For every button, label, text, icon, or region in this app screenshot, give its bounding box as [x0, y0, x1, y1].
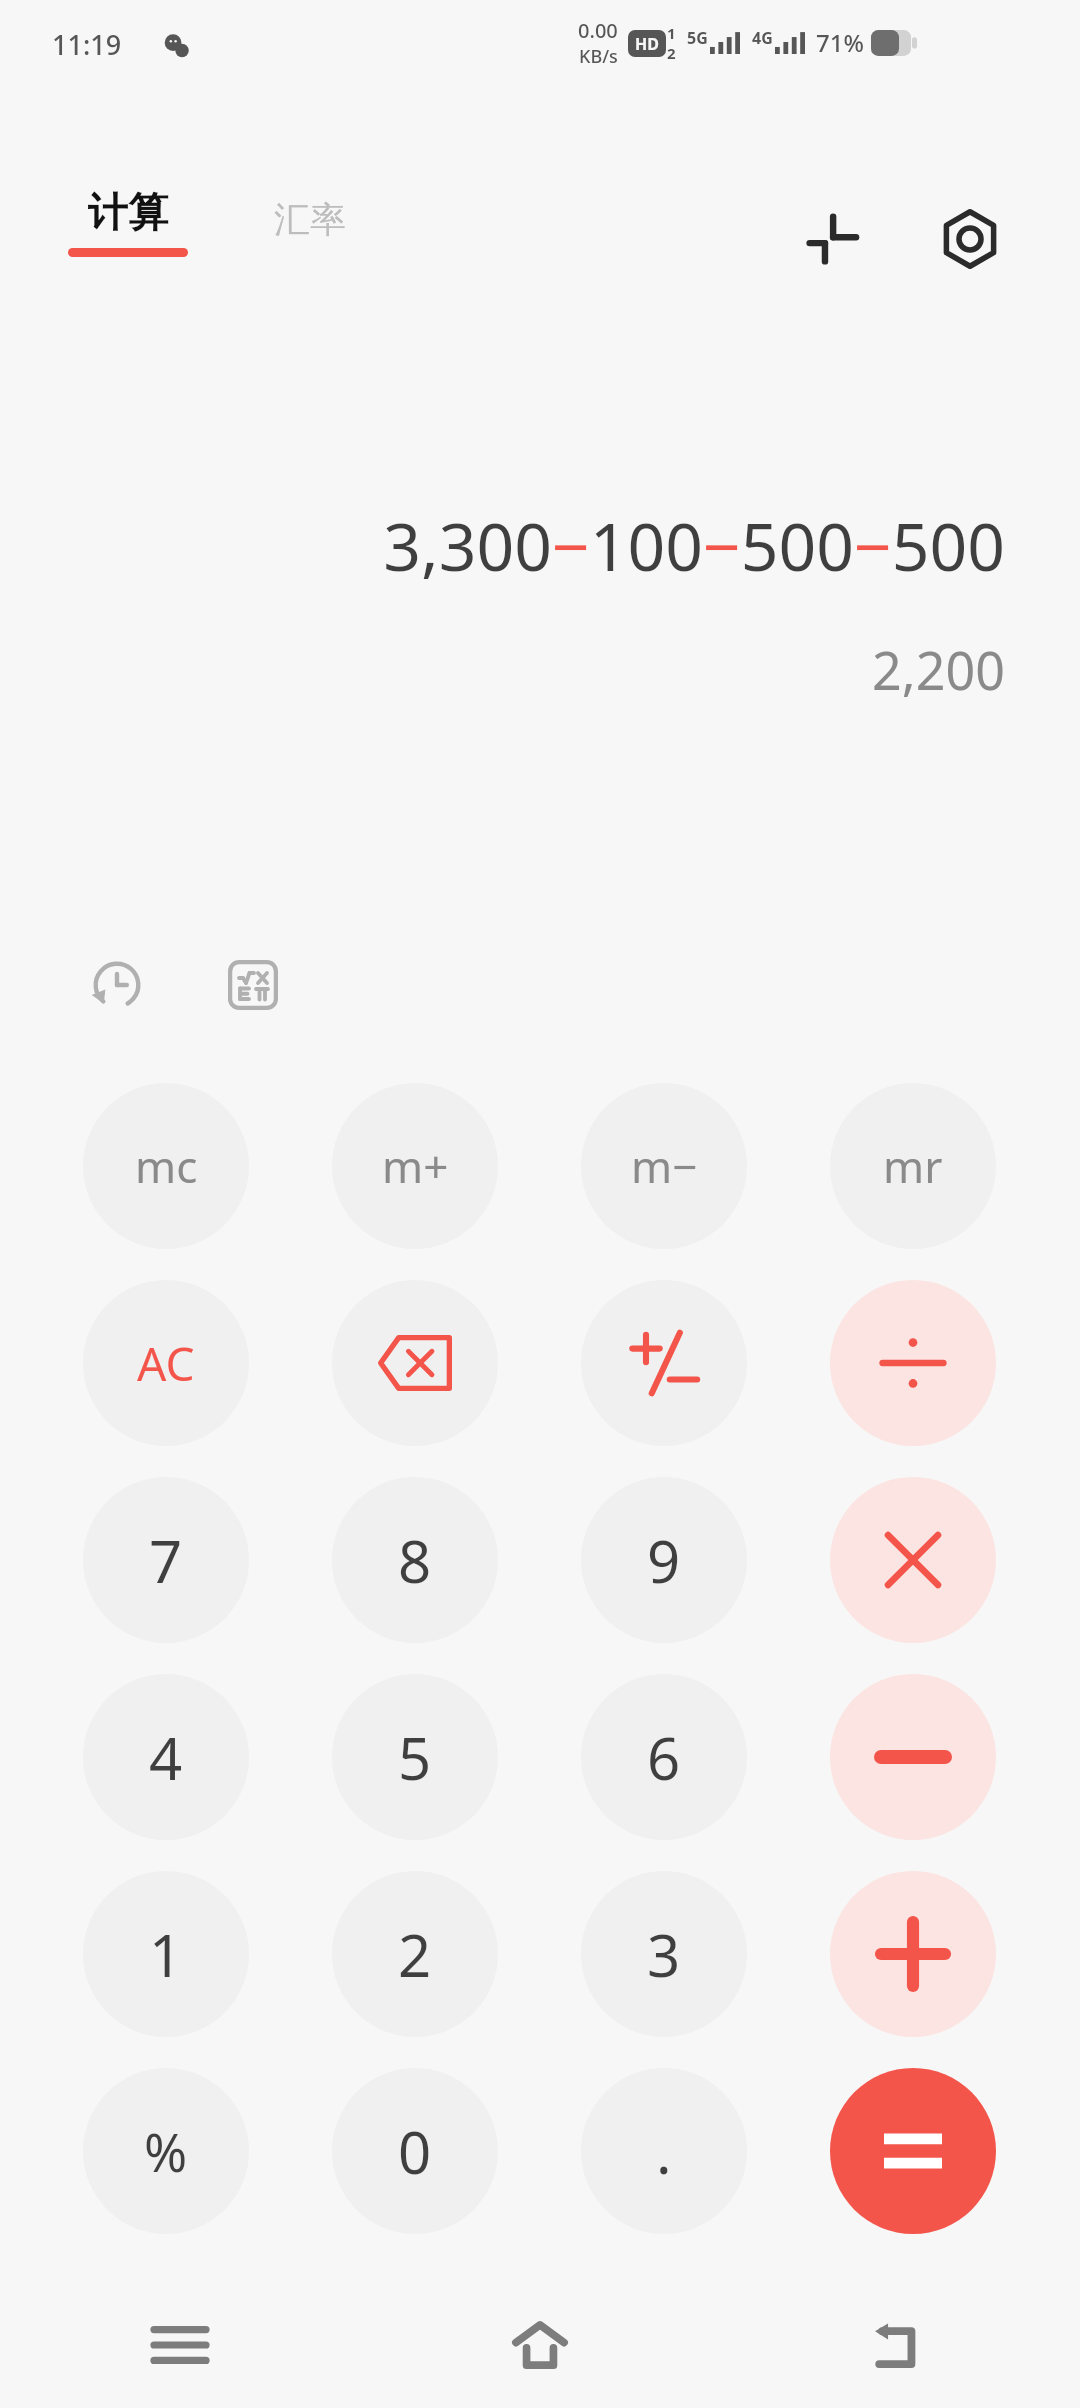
- staticText: m+: [382, 1136, 449, 1196]
- button[interactable]: Equals: [830, 2068, 996, 2234]
- staticText: 8: [398, 1521, 432, 1600]
- button[interactable]: History: [62, 930, 172, 1040]
- staticText: mr: [883, 1136, 943, 1196]
- button[interactable]: 5: [332, 1674, 498, 1840]
- staticText: .: [656, 2112, 672, 2191]
- staticText: 7: [149, 1521, 183, 1600]
- button[interactable]: 9: [581, 1477, 747, 1643]
- staticText: 4G: [752, 27, 773, 49]
- button[interactable]: 7: [83, 1477, 249, 1643]
- button[interactable]: 6: [581, 1674, 747, 1840]
- staticText: 1: [149, 1915, 183, 1994]
- button[interactable]: mr: [830, 1083, 996, 1249]
- staticText: 0.00: [578, 17, 618, 44]
- staticText: 2: [398, 1915, 432, 1994]
- staticText: 汇率: [274, 197, 346, 242]
- button[interactable]: 汇率: [256, 183, 364, 256]
- button[interactable]: Plus minus: [581, 1280, 747, 1446]
- button[interactable]: Multiply: [830, 1477, 996, 1643]
- staticText: 3,300−100−500−500: [383, 500, 1005, 590]
- button[interactable]: m−: [581, 1083, 747, 1249]
- button[interactable]: m+: [332, 1083, 498, 1249]
- button[interactable]: .: [581, 2068, 747, 2234]
- button[interactable]: Collapse: [782, 189, 882, 289]
- button[interactable]: Minus: [830, 1674, 996, 1840]
- staticText: 9: [647, 1521, 681, 1600]
- button[interactable]: 0: [332, 2068, 498, 2234]
- button[interactable]: Scientific: [198, 930, 308, 1040]
- button[interactable]: Plus: [830, 1871, 996, 2037]
- button[interactable]: 3: [581, 1871, 747, 2037]
- staticText: m−: [631, 1136, 698, 1196]
- staticText: 4: [149, 1718, 183, 1797]
- button[interactable]: AC: [83, 1280, 249, 1446]
- staticText: 11:19: [52, 26, 122, 63]
- staticText: KB/s: [579, 44, 618, 69]
- staticText: 计算: [88, 187, 168, 237]
- button[interactable]: Divide: [830, 1280, 996, 1446]
- staticText: %: [144, 2116, 188, 2187]
- staticText: 6: [647, 1718, 681, 1797]
- button[interactable]: 8: [332, 1477, 498, 1643]
- staticText: 71%: [816, 26, 864, 59]
- staticText: mc: [135, 1136, 198, 1196]
- staticText: 2: [667, 43, 676, 63]
- staticText: 0: [398, 2112, 432, 2191]
- staticText: 2,200: [872, 634, 1005, 705]
- button[interactable]: 计算: [52, 175, 204, 269]
- staticText: 3: [647, 1915, 681, 1994]
- button[interactable]: mc: [83, 1083, 249, 1249]
- button[interactable]: Back: [720, 2290, 1080, 2400]
- button[interactable]: Settings: [920, 189, 1020, 289]
- staticText: 1: [667, 23, 676, 43]
- button[interactable]: Recents: [0, 2290, 360, 2400]
- button[interactable]: Home: [360, 2290, 720, 2400]
- staticText: 5: [398, 1718, 432, 1797]
- staticText: HD: [635, 33, 659, 55]
- button[interactable]: 2: [332, 1871, 498, 2037]
- button[interactable]: %: [83, 2068, 249, 2234]
- staticText: 5G: [687, 27, 708, 49]
- button[interactable]: 4: [83, 1674, 249, 1840]
- button[interactable]: Backspace: [332, 1280, 498, 1446]
- button[interactable]: 1: [83, 1871, 249, 2037]
- staticText: AC: [137, 1332, 195, 1395]
